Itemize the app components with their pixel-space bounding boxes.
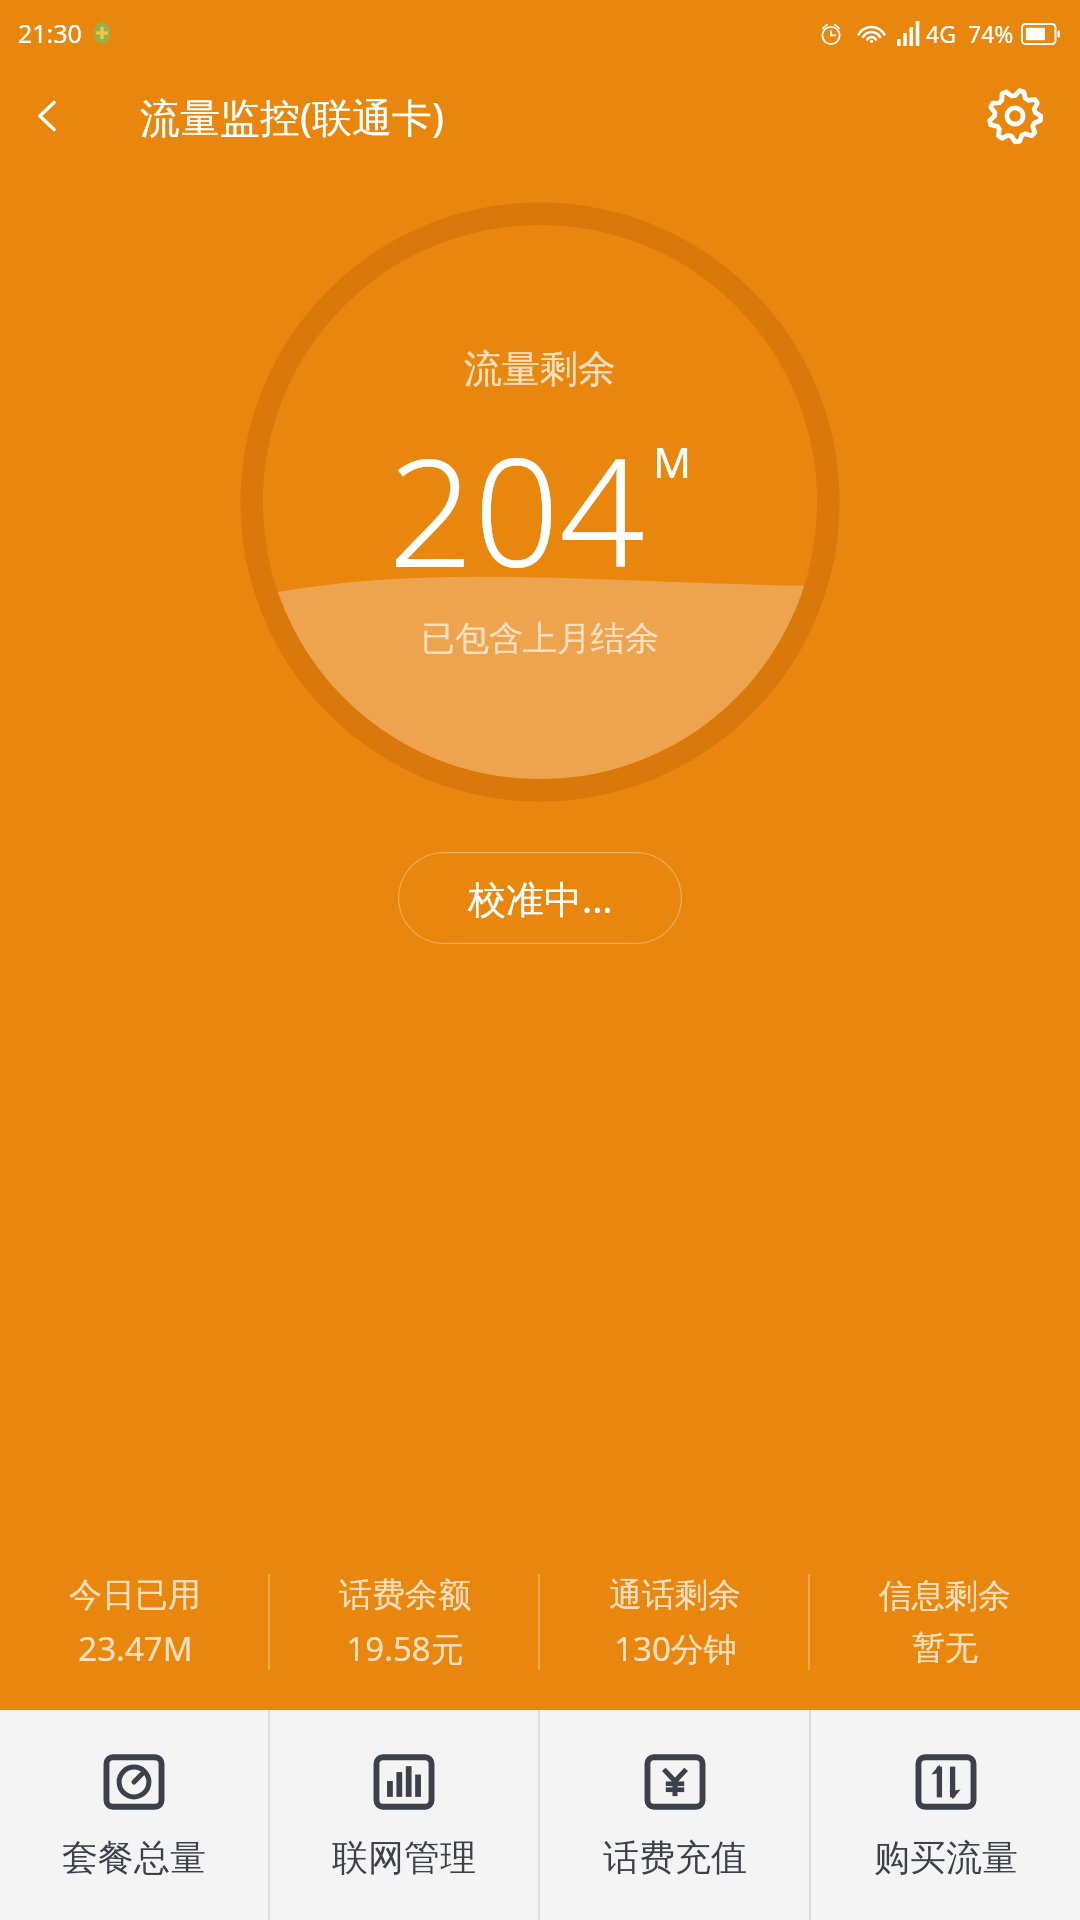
button[interactable]: 联网管理 [270,1710,538,1920]
staticText: 暂无 [912,1627,978,1669]
staticText: 4G [926,18,956,49]
button[interactable]: 购买流量 [811,1710,1080,1920]
staticText: 通话剩余 [609,1574,741,1616]
staticText: 话费余额 [339,1574,471,1616]
staticText: 23.47M [78,1626,193,1671]
staticText: 流量监控(联通卡) [140,89,444,144]
staticText: 信息剩余 [879,1575,1011,1617]
staticText: 联网管理 [332,1835,476,1880]
button[interactable]: 套餐总量 [0,1710,268,1920]
button[interactable]: Settings [970,71,1060,161]
staticText: 购买流量 [874,1835,1018,1880]
staticText: 流量剩余 [464,345,616,393]
staticText: 21:30 [18,16,82,50]
staticText: 19.58元 [346,1626,464,1671]
staticText: 130分钟 [614,1626,737,1671]
staticText: 已包含上月结余 [421,617,659,660]
staticText: 校准中... [468,872,613,924]
staticText: 套餐总量 [62,1835,206,1880]
staticText: 74% [968,18,1014,49]
button[interactable]: 校准中... [398,852,682,944]
staticText: 今日已用 [69,1574,201,1616]
staticText: M [653,433,692,490]
staticText: 204 [388,407,645,611]
button[interactable]: 话费充值 [540,1710,809,1920]
staticText: 话费充值 [603,1835,747,1880]
button[interactable]: Back [0,68,96,164]
